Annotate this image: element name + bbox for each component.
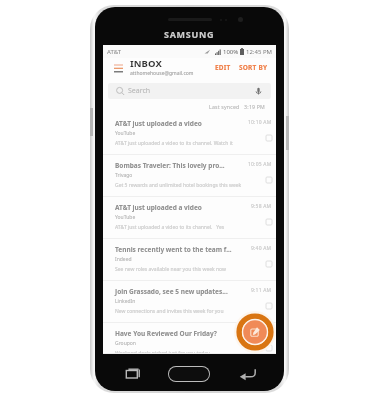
- staticText: 10:10 AM: [248, 119, 272, 126]
- staticText: LinkedIn: [115, 298, 136, 305]
- staticText: AT&T just uploaded a video: [115, 203, 202, 212]
- button[interactable]: Recent apps: [124, 367, 142, 380]
- button[interactable]: Search: [108, 83, 271, 99]
- button[interactable]: Tennis recently went to the team f...: [103, 239, 276, 281]
- staticText: Trivago: [115, 172, 133, 179]
- staticText: 9:58 AM: [251, 203, 272, 210]
- staticText: See new roles available near you this we…: [115, 266, 226, 273]
- button[interactable]: Have You Reviewed Our Friday?: [103, 323, 276, 354]
- button[interactable]: Select: [266, 261, 272, 267]
- button[interactable]: Select: [266, 135, 272, 141]
- staticText: EDIT: [215, 63, 231, 72]
- button[interactable]: Back: [239, 367, 257, 380]
- staticText: SAMSUNG: [164, 28, 215, 40]
- staticText: INBOX: [130, 57, 162, 70]
- staticText: AT&T just uploaded a video to its channe…: [115, 224, 225, 231]
- button[interactable]: SORT BY: [237, 60, 270, 75]
- staticText: Get 5 rewards and unlimited hotel bookin…: [115, 182, 242, 189]
- button[interactable]: Select: [266, 345, 272, 351]
- button[interactable]: Select: [266, 303, 272, 309]
- button[interactable]: EDIT: [213, 60, 233, 75]
- staticText: Weekend deals picked just for you today: [115, 350, 210, 353]
- button[interactable]: Select: [266, 219, 272, 225]
- staticText: Search: [128, 86, 151, 96]
- button[interactable]: Compose new message: [234, 311, 276, 353]
- staticText: Groupon: [115, 340, 136, 347]
- staticText: 10:05 AM: [248, 161, 272, 168]
- staticText: AT&T just uploaded a video: [115, 119, 202, 128]
- button[interactable]: Menu: [114, 63, 123, 74]
- staticText: Tennis recently went to the team f...: [115, 245, 232, 254]
- staticText: Last synced 3:19 PM: [209, 103, 266, 110]
- staticText: 9:40 AM: [251, 245, 272, 252]
- staticText: AT&T: [107, 48, 121, 56]
- button[interactable]: Join Grassado, see 5 new updates...: [103, 281, 276, 323]
- staticText: New connections and invites this week fo…: [115, 308, 224, 315]
- staticText: AT&T just uploaded a video to its channe…: [115, 140, 242, 147]
- staticText: YouTube: [115, 130, 136, 137]
- button[interactable]: Bombas Traveler: This lovely pro...: [103, 155, 276, 197]
- staticText: Indeed: [115, 256, 132, 263]
- staticText: 100%: [223, 48, 239, 56]
- button[interactable]: AT&T just uploaded a video: [103, 197, 276, 239]
- button[interactable]: Home: [168, 366, 210, 382]
- button[interactable]: Voice search: [255, 87, 262, 96]
- staticText: 8:20 AM: [251, 329, 272, 336]
- staticText: Bombas Traveler: This lovely pro...: [115, 161, 225, 170]
- staticText: YouTube: [115, 214, 136, 221]
- button[interactable]: AT&T just uploaded a video: [103, 113, 276, 155]
- staticText: Have You Reviewed Our Friday?: [115, 329, 217, 338]
- staticText: 12:45 PM: [246, 48, 272, 56]
- staticText: atthomehouse@gmail.com: [130, 70, 194, 77]
- staticText: 9:11 AM: [251, 287, 272, 294]
- staticText: Join Grassado, see 5 new updates...: [115, 287, 228, 296]
- staticText: SORT BY: [239, 63, 268, 72]
- button[interactable]: Select: [266, 177, 272, 183]
